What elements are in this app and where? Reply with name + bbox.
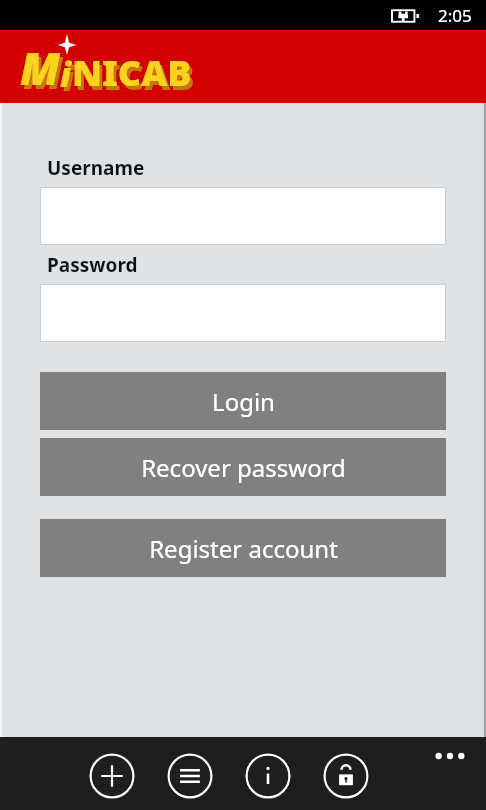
button[interactable]	[40, 284, 446, 342]
staticText: Login	[212, 385, 275, 418]
button[interactable]: Login	[40, 372, 446, 430]
button[interactable]: More options	[430, 745, 470, 767]
button[interactable]: Add	[88, 752, 136, 800]
button[interactable]: Register account	[40, 519, 446, 577]
staticText: M	[23, 42, 63, 102]
button[interactable]: Info	[244, 752, 292, 800]
button[interactable]: Menu	[166, 752, 214, 800]
button[interactable]: Lock	[322, 752, 370, 800]
staticText: Recover password	[141, 451, 346, 484]
staticText: M	[20, 38, 60, 98]
staticText: Register account	[149, 532, 338, 565]
staticText: 2:05	[438, 4, 472, 27]
staticText: NICAB	[72, 48, 192, 97]
staticText: Username	[47, 155, 145, 181]
staticText: i	[60, 51, 72, 97]
staticText: NICAB	[75, 52, 195, 101]
staticText: i	[63, 55, 75, 101]
button[interactable]: Recover password	[40, 438, 446, 496]
button[interactable]	[40, 187, 446, 245]
staticText: Password	[47, 252, 138, 278]
